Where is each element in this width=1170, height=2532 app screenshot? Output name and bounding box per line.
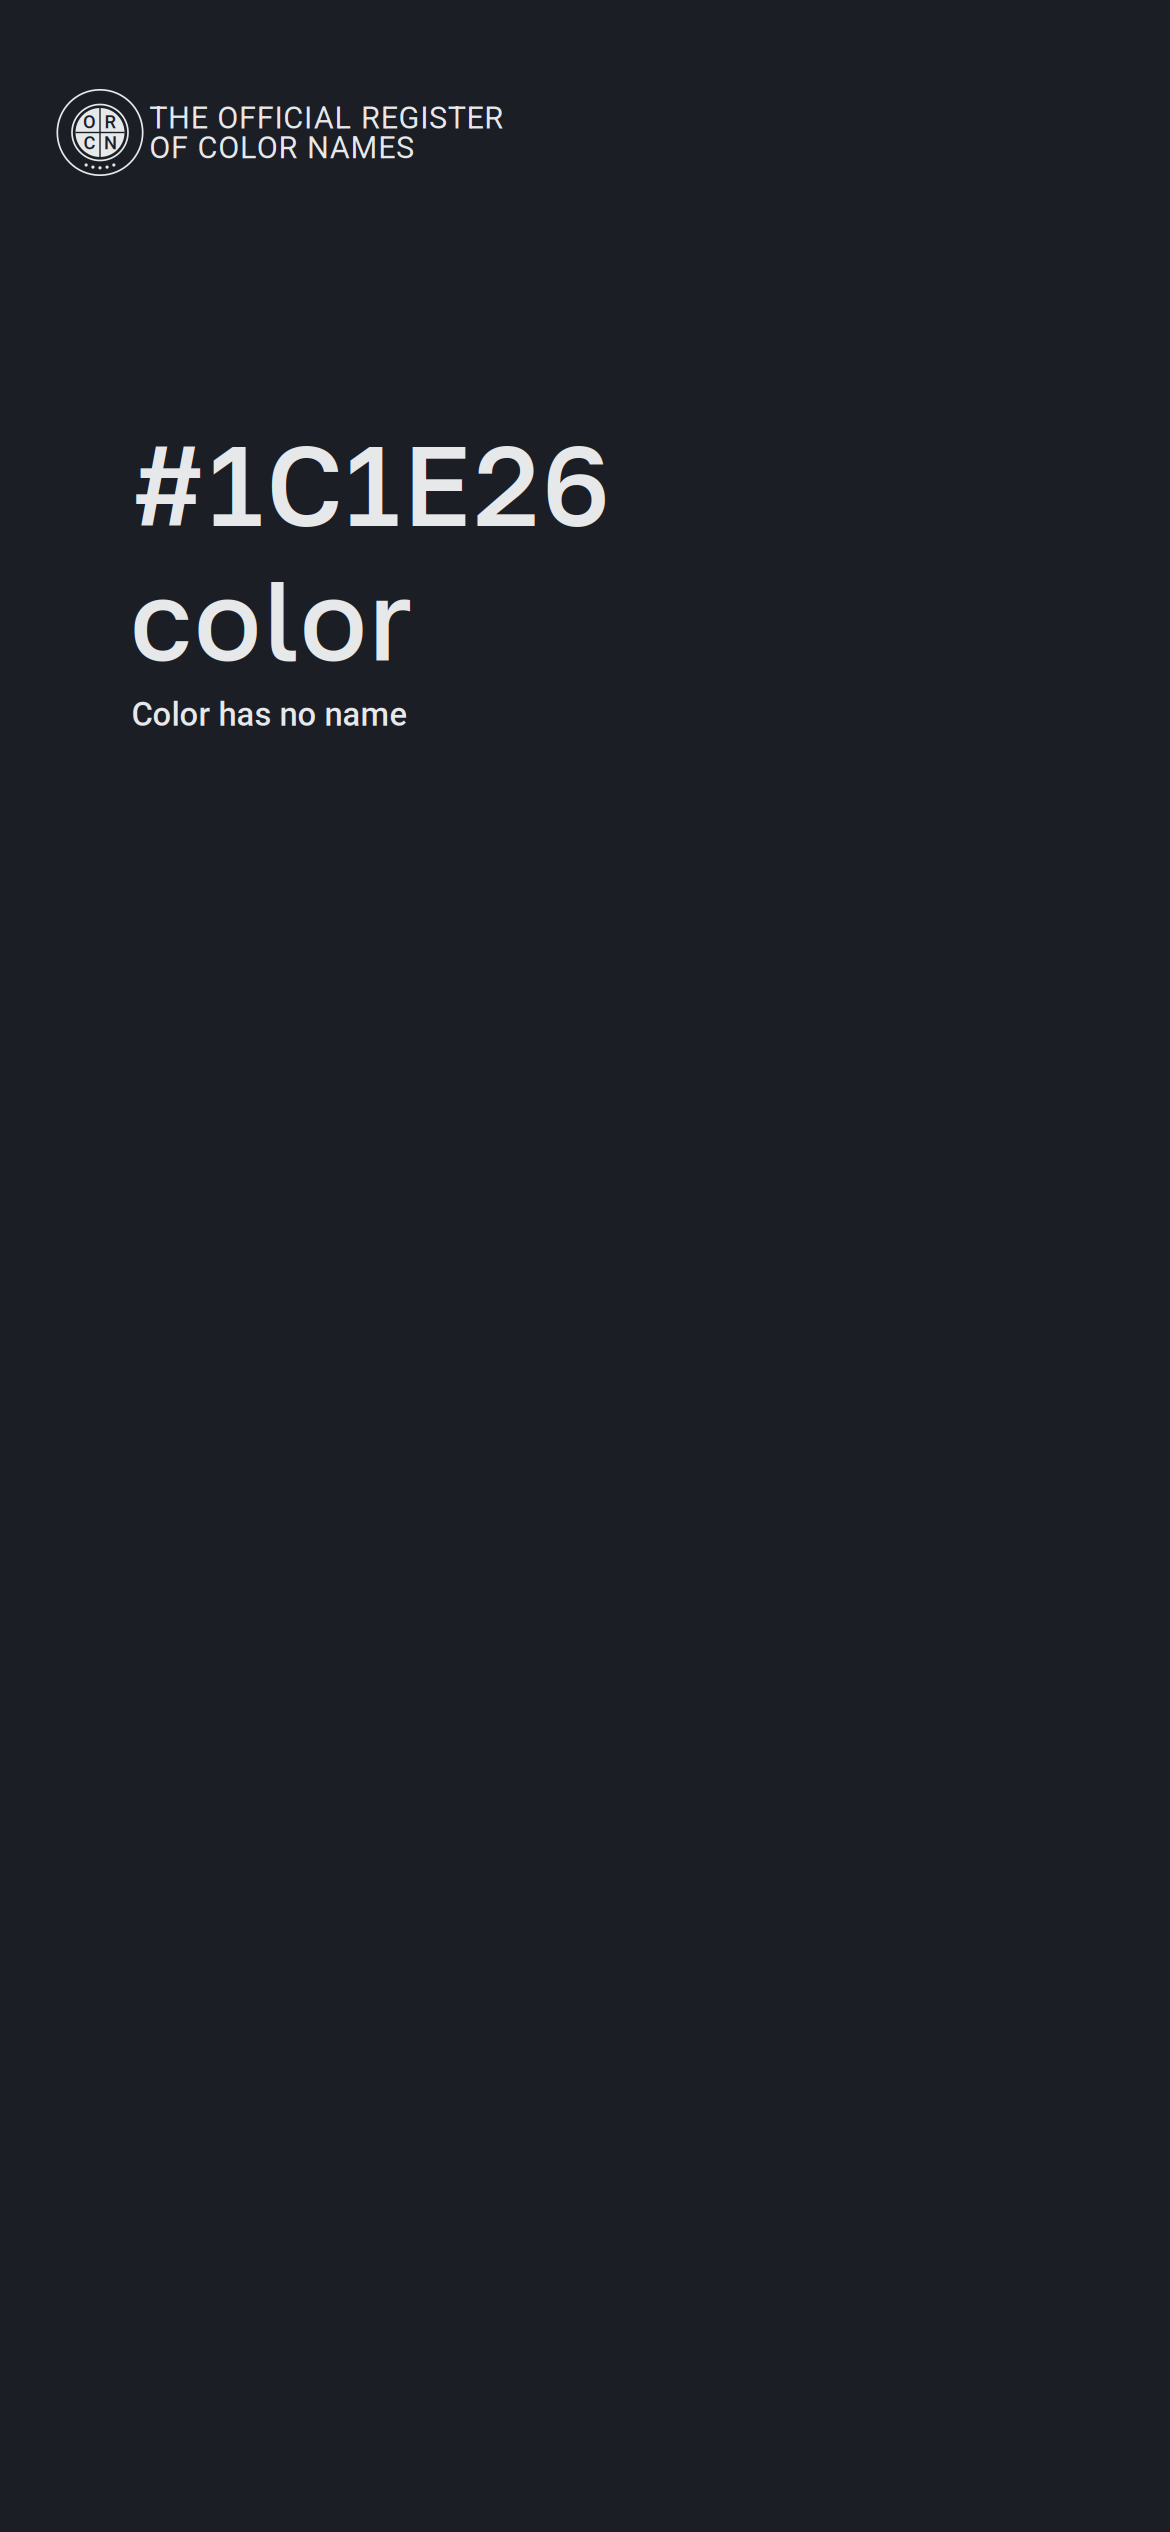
staticText: R (105, 111, 117, 133)
staticText: Color has no name (131, 695, 407, 734)
staticText: O (83, 111, 96, 133)
staticText: OF COLOR NAMES (149, 130, 414, 166)
staticText: C (83, 132, 95, 154)
staticText: THE OFFICIAL REGISTER (149, 100, 503, 136)
staticText: #1C1E26 color (130, 416, 925, 551)
button[interactable]: O (56, 88, 502, 176)
staticText: N (104, 132, 117, 154)
